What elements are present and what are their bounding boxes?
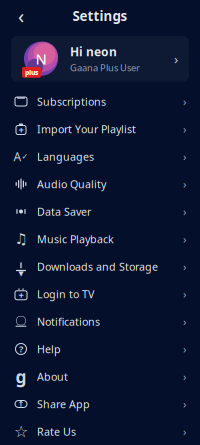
staticText: Downloads and Storage: [37, 259, 158, 274]
staticText: Help: [37, 342, 61, 356]
staticText: ›: [183, 149, 186, 164]
staticText: ›: [183, 369, 186, 384]
button[interactable]: Notifications: [0, 308, 200, 335]
staticText: ›: [183, 314, 186, 329]
button[interactable]: ♫: [0, 225, 200, 253]
staticText: Rate Us: [37, 424, 76, 439]
staticText: ☆: [14, 422, 28, 441]
staticText: ↑: [17, 399, 24, 409]
staticText: ›: [174, 50, 178, 68]
staticText: ›: [183, 342, 186, 356]
button[interactable]: +: [0, 280, 200, 308]
button[interactable]: A: [0, 143, 200, 170]
staticText: Audio Quality: [37, 177, 106, 191]
staticText: Gaana Plus User: [70, 61, 140, 74]
staticText: A: [13, 148, 21, 164]
staticText: Languages: [37, 149, 94, 164]
staticText: ‹: [18, 2, 24, 29]
staticText: ›: [183, 122, 186, 136]
button[interactable]: Audio Quality: [0, 170, 200, 198]
staticText: ›: [183, 397, 186, 411]
staticText: g: [15, 365, 26, 388]
staticText: ›: [183, 259, 186, 274]
button[interactable]: ☆: [0, 418, 200, 445]
staticText: ♫: [14, 231, 27, 247]
staticText: Login to TV: [37, 287, 94, 301]
button[interactable]: Data Saver: [0, 198, 200, 225]
button[interactable]: ?: [0, 335, 200, 363]
staticText: ›: [183, 177, 186, 191]
staticText: +: [18, 289, 23, 301]
staticText: Subscriptions: [37, 94, 106, 109]
staticText: ›: [183, 232, 186, 246]
button[interactable]: ↑: [0, 390, 200, 418]
staticText: ›: [183, 424, 186, 439]
staticText: +: [18, 124, 23, 136]
button[interactable]: g: [0, 363, 200, 390]
staticText: ?: [19, 343, 23, 355]
staticText: ›: [183, 94, 186, 109]
staticText: plus: [25, 68, 38, 77]
button[interactable]: Subscriptions: [0, 88, 200, 115]
staticText: ›: [183, 287, 186, 301]
button[interactable]: ▼: [0, 253, 200, 280]
staticText: ›: [183, 204, 186, 219]
staticText: Music Playback: [37, 232, 114, 246]
button[interactable]: N: [11, 36, 189, 82]
staticText: About: [37, 369, 68, 384]
staticText: Data Saver: [37, 204, 91, 219]
staticText: N: [35, 49, 46, 68]
staticText: Settings: [72, 7, 127, 25]
staticText: ▼: [18, 270, 23, 277]
button[interactable]: +: [0, 115, 200, 143]
staticText: Notifications: [37, 314, 100, 329]
staticText: Import Your Playlist: [37, 122, 136, 136]
staticText: Share App: [37, 397, 90, 411]
button[interactable]: Back: [6, 4, 36, 28]
staticText: Hi neon: [70, 44, 117, 59]
staticText: ✓: [21, 152, 28, 161]
